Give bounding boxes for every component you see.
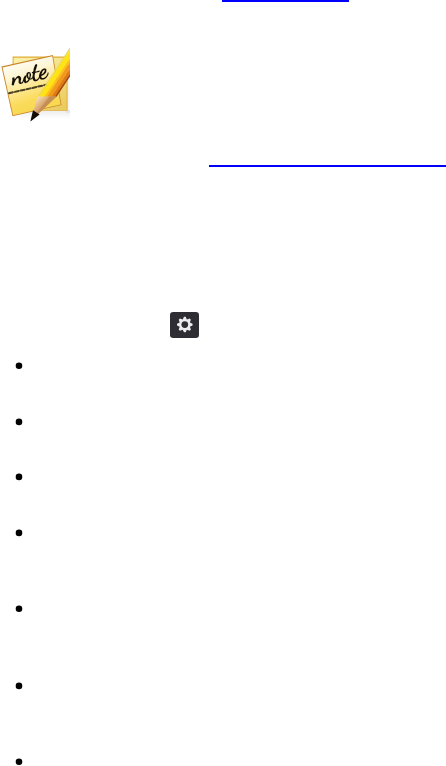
- other: Note: [0, 0, 80, 130]
- button[interactable]: Settings: [170, 312, 199, 338]
- staticText: note: [8, 54, 51, 91]
